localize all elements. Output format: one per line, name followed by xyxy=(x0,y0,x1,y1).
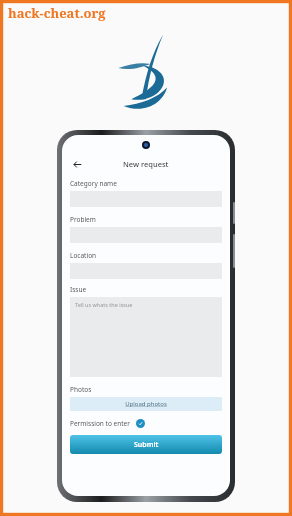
staticText: hack-cheat.org xyxy=(8,4,106,22)
staticText: Problem xyxy=(70,215,96,224)
button[interactable]: Tell us whats the issue xyxy=(70,297,222,377)
staticText: Issue xyxy=(70,285,87,294)
button[interactable]: Back xyxy=(68,155,86,173)
button[interactable]: Permission to enter xyxy=(70,419,222,428)
staticText: Location xyxy=(70,251,97,260)
button[interactable]: Upload photos xyxy=(70,397,222,411)
staticText: New request xyxy=(123,159,169,169)
staticText: Category name xyxy=(70,179,117,188)
staticText: Upload photos xyxy=(125,400,167,408)
button[interactable]: Submit xyxy=(70,435,222,454)
staticText: Submit xyxy=(134,440,159,450)
staticText: Photos xyxy=(70,385,92,394)
staticText: Tell us whats the issue xyxy=(75,301,133,308)
staticText: Permission to enter xyxy=(70,419,130,428)
